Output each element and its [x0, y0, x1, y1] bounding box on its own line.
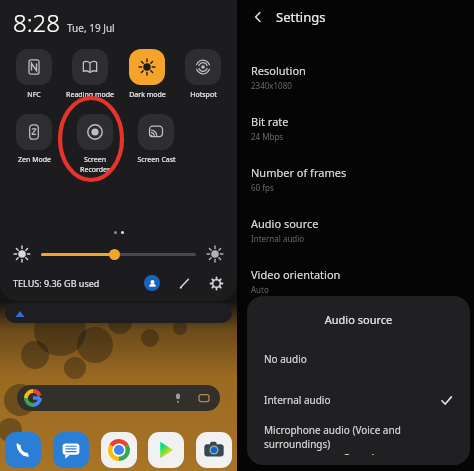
- button[interactable]: Video orientation: [237, 262, 474, 300]
- button[interactable]: User: [144, 275, 160, 291]
- button[interactable]: Audio source: [237, 211, 474, 249]
- button[interactable]: Hide floating widget: [237, 313, 474, 352]
- button[interactable]: NFC: [8, 49, 60, 100]
- button[interactable]: phone: [5, 432, 41, 468]
- staticText: 2340x1080: [251, 80, 292, 91]
- staticText: Video orientation: [251, 267, 341, 282]
- staticText: Hotspot: [190, 90, 217, 100]
- staticText: Resolution: [251, 63, 306, 78]
- staticText: Screen Cast: [137, 155, 176, 165]
- button[interactable]: Edit: [176, 275, 192, 291]
- button[interactable]: cam: [196, 432, 232, 468]
- button[interactable]: Search: [17, 385, 220, 411]
- staticText: Bit rate: [251, 114, 289, 129]
- button[interactable]: Reading mode: [64, 49, 116, 100]
- staticText: Screen Recorder: [69, 155, 121, 175]
- staticText: 24 Mbps: [251, 131, 284, 142]
- staticText: Tue, 19 Jul: [67, 21, 115, 35]
- button[interactable]: play: [148, 432, 184, 468]
- button[interactable]: Screen Cast: [130, 114, 182, 165]
- staticText: Dark mode: [129, 90, 166, 100]
- button[interactable]: Microphone audio (Voice and surroundings…: [247, 423, 470, 451]
- button[interactable]: Internal audio: [247, 386, 470, 414]
- staticText: TELUS: 9.36 GB used: [13, 277, 100, 289]
- staticText: Internal audio: [264, 393, 440, 407]
- button[interactable]: Bit rate: [237, 109, 474, 147]
- button[interactable]: Back: [237, 0, 474, 34]
- button[interactable]: Hotspot: [177, 49, 229, 100]
- button[interactable]: Cancel: [247, 451, 470, 465]
- button[interactable]: chrome: [101, 432, 137, 468]
- button[interactable]: Resolution: [237, 58, 474, 96]
- button[interactable]: Number of frames: [237, 160, 474, 198]
- staticText: 60 fps: [251, 182, 274, 193]
- button[interactable]: Back: [249, 8, 267, 26]
- staticText: Microphone audio (Voice and surroundings…: [264, 423, 453, 451]
- staticText: Internal audio: [251, 233, 305, 244]
- staticText: NFC: [27, 90, 41, 100]
- staticText: No audio: [264, 352, 453, 366]
- staticText: Cancel: [343, 451, 375, 455]
- staticText: Settings: [276, 8, 326, 26]
- button[interactable]: Zen Mode: [8, 114, 60, 165]
- staticText: Auto: [251, 284, 269, 295]
- button[interactable]: Settings: [208, 275, 224, 291]
- staticText: Zen Mode: [18, 155, 51, 165]
- button[interactable]: msg: [53, 432, 89, 468]
- button[interactable]: Brightness: [41, 248, 196, 260]
- staticText: 8:28: [13, 6, 60, 39]
- button[interactable]: Dark mode: [121, 49, 173, 100]
- staticText: Reading mode: [66, 90, 114, 100]
- button[interactable]: Screen Recorder: [69, 114, 121, 175]
- staticText: Audio source: [247, 312, 470, 327]
- staticText: Hide floating widget: [251, 313, 356, 328]
- staticText: Audio source: [251, 216, 319, 231]
- button[interactable]: No audio: [247, 345, 470, 373]
- staticText: Number of frames: [251, 165, 347, 180]
